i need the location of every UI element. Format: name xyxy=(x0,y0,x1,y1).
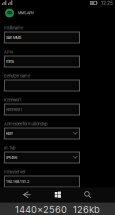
button[interactable]: Kein xyxy=(4,127,80,139)
button[interactable]: Back xyxy=(22,190,32,199)
button[interactable]: Kennwort xyxy=(4,103,80,115)
button[interactable]: IPv4v6 xyxy=(4,151,80,163)
staticText: APN xyxy=(4,50,13,54)
button[interactable]: Salt MMS xyxy=(4,31,80,43)
staticText: Salt MMS xyxy=(6,35,21,40)
staticText: mms xyxy=(6,59,14,64)
button[interactable]: mms xyxy=(4,55,80,67)
staticText: 192.168.151.2 xyxy=(6,179,29,184)
staticText: IPv4v6 xyxy=(6,155,17,160)
staticText: Benutzername xyxy=(4,74,30,78)
button[interactable] xyxy=(4,79,80,91)
staticText: Kennwort xyxy=(6,107,22,112)
staticText: 12:25 xyxy=(101,0,113,6)
button[interactable]: 192.168.151.2 xyxy=(4,175,80,187)
staticText: 1440x2560 126kb xyxy=(15,204,100,215)
button[interactable]: Start xyxy=(54,190,61,199)
staticText: IP-Typ xyxy=(4,146,15,150)
staticText: Anmeldeinformationstyp xyxy=(4,122,47,126)
staticText: Proxyserver xyxy=(4,170,26,174)
staticText: Kennwort xyxy=(4,98,21,102)
staticText: Kein xyxy=(6,131,13,136)
staticText: Profilname xyxy=(4,26,23,30)
button[interactable]: Search xyxy=(84,190,93,199)
staticText: MMS-APN xyxy=(18,11,34,15)
